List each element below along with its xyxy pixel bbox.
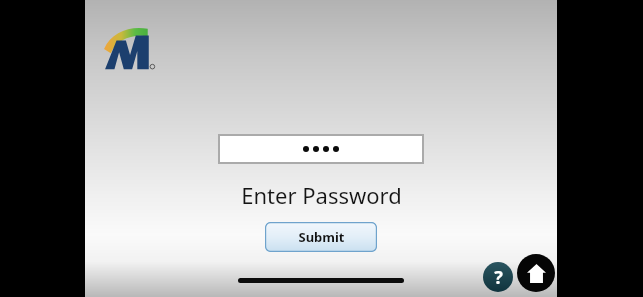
button[interactable] bbox=[220, 136, 422, 162]
staticText: Submit bbox=[298, 228, 345, 246]
other: Company logo bbox=[103, 28, 155, 70]
button[interactable]: Submit bbox=[265, 222, 377, 252]
button[interactable]: Help bbox=[483, 262, 513, 292]
staticText: Enter Password bbox=[241, 180, 402, 210]
staticText: ? bbox=[494, 265, 503, 290]
button[interactable]: Home bbox=[517, 254, 555, 292]
